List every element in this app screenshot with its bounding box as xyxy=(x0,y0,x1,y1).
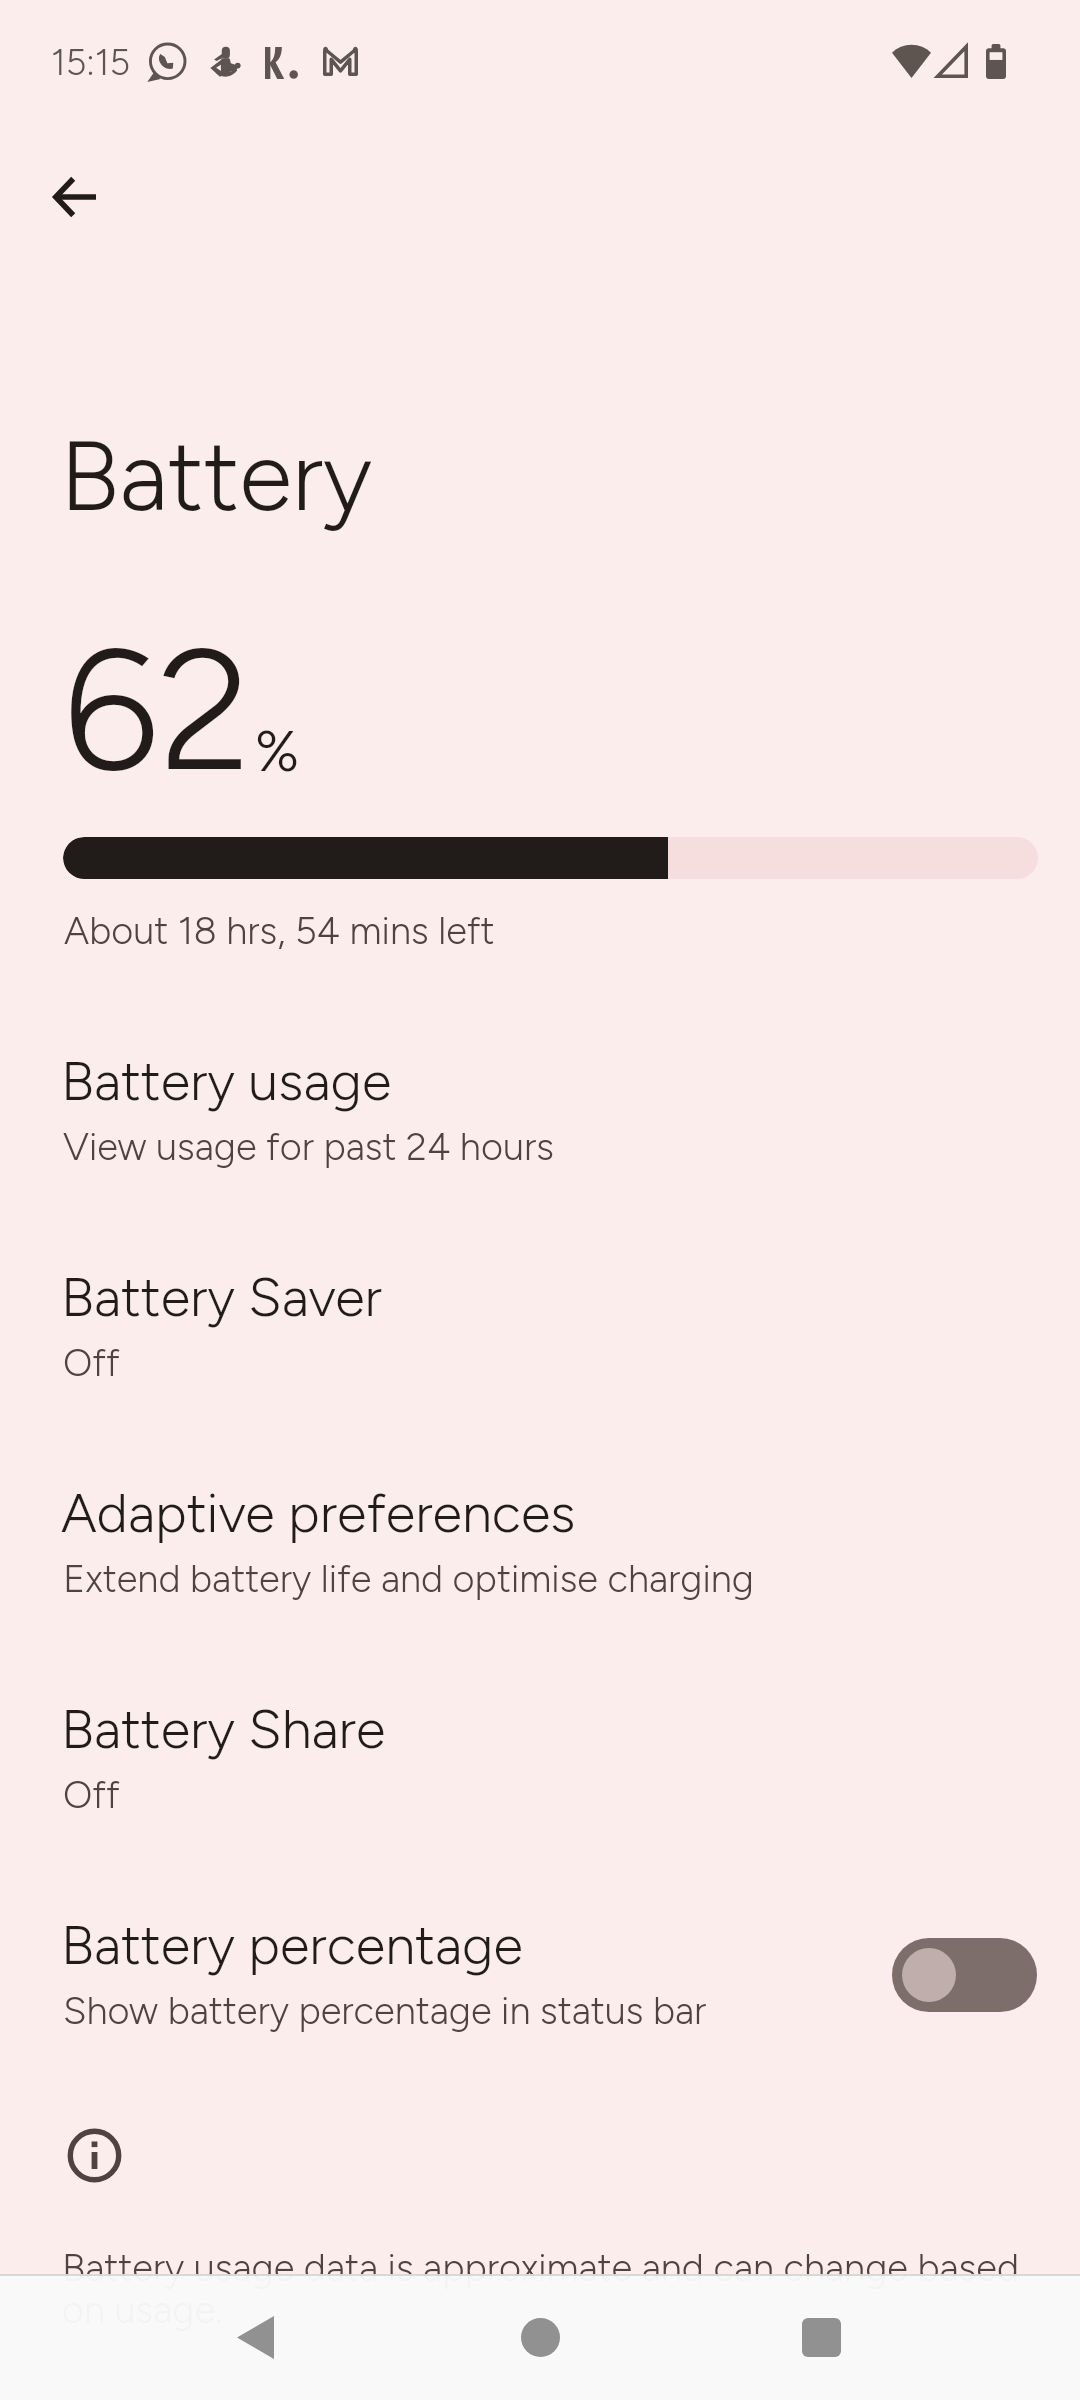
button[interactable]: Battery Saver xyxy=(0,1238,1080,1428)
button[interactable]: Battery usage xyxy=(0,1022,1080,1212)
staticText: About 18 hrs, 54 mins left xyxy=(64,908,495,954)
button[interactable]: Back xyxy=(28,151,120,243)
staticText: Battery Saver xyxy=(61,1265,382,1330)
staticText: Off xyxy=(63,1340,120,1386)
staticText: Battery usage data is approximate and ca… xyxy=(62,2245,1052,2333)
staticText: % xyxy=(255,717,300,785)
staticText: Show battery percentage in status bar xyxy=(63,1988,707,2034)
staticText: Battery Share xyxy=(61,1697,386,1762)
button[interactable]: Back xyxy=(180,2290,330,2384)
staticText: Adaptive preferences xyxy=(61,1481,576,1546)
staticText: 15:15 xyxy=(51,41,131,84)
button[interactable]: Home xyxy=(465,2290,615,2384)
button[interactable]: Battery Share xyxy=(0,1670,1080,1860)
button[interactable]: Adaptive preferences xyxy=(0,1454,1080,1644)
staticText: Extend battery life and optimise chargin… xyxy=(63,1556,754,1602)
staticText: Battery usage xyxy=(61,1049,392,1114)
staticText: View usage for past 24 hours xyxy=(63,1124,554,1170)
button[interactable]: Battery percentage toggle xyxy=(892,1938,1037,2012)
staticText: Battery xyxy=(60,418,373,534)
button[interactable]: Recent apps xyxy=(746,2290,896,2384)
staticText: Battery percentage xyxy=(61,1913,523,1978)
button[interactable]: Battery percentage xyxy=(0,1886,1080,2076)
staticText: Off xyxy=(63,1772,120,1818)
staticText: 62 xyxy=(63,607,252,811)
